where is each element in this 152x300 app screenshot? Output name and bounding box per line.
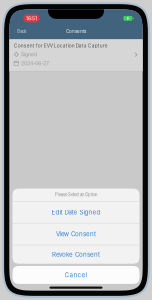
- button[interactable]: Consent for EVV Location Data Capture: [9, 39, 143, 71]
- button[interactable]: View Consent: [12, 223, 139, 245]
- staticText: Please Select an Option: [55, 192, 97, 197]
- button[interactable]: Edit Date Signed: [12, 202, 139, 223]
- staticText: Cancel: [64, 271, 87, 279]
- staticText: View Consent: [56, 230, 96, 238]
- staticText: 2024-06-27: [21, 60, 49, 66]
- staticText: Signed: [21, 51, 37, 58]
- button[interactable]: Back: [9, 24, 31, 39]
- staticText: Consents: [66, 28, 86, 34]
- staticText: Edit Date Signed: [51, 209, 100, 216]
- button[interactable]: Cancel: [12, 266, 139, 284]
- button[interactable]: Revoke Consent: [12, 245, 139, 264]
- staticText: Back: [17, 29, 26, 34]
- staticText: 16:51: [26, 15, 37, 21]
- staticText: Revoke Consent: [52, 251, 100, 258]
- staticText: Consent for EVV Location Data Capture: [14, 43, 108, 49]
